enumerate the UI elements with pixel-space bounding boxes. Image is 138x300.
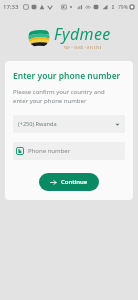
staticText: Enter your phone number — [13, 70, 121, 82]
other: Phone — [16, 147, 24, 155]
staticText: 79% — [118, 4, 128, 11]
staticText: PAY • SEND • RECEIVE — [64, 46, 102, 50]
staticText: (+250) Rwanda — [18, 120, 57, 128]
staticText: 17:33 — [3, 3, 19, 11]
button[interactable]: Phone — [13, 142, 125, 160]
staticText: Fydmee — [54, 23, 111, 45]
staticText: Phone number — [28, 147, 71, 155]
button[interactable]: Continue — [39, 173, 99, 191]
button[interactable]: (+250) Rwanda — [13, 115, 125, 133]
staticText: Please confirm your country and enter yo… — [13, 88, 105, 105]
staticText: Continue — [61, 178, 88, 186]
